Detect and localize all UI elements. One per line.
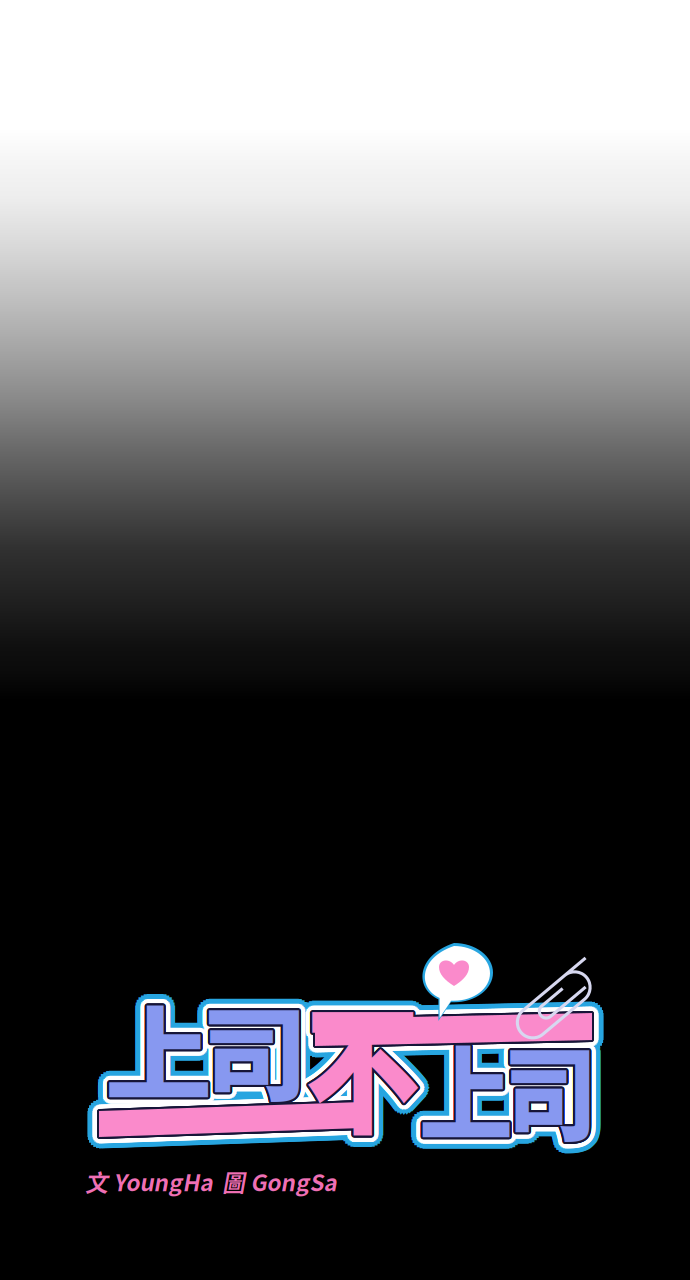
staticText: 上司 (427, 1022, 675, 1211)
staticText: 上司 (422, 1008, 670, 1198)
staticText: 上司 (413, 1011, 661, 1200)
staticText: 上司 (95, 968, 343, 1157)
staticText: 上司 (115, 980, 363, 1169)
staticText: 上司 (421, 1008, 669, 1197)
staticText: 上司 (424, 1009, 672, 1199)
staticText: 上司 (107, 973, 355, 1162)
staticText: 上司 (420, 1012, 668, 1201)
staticText: 不 (303, 961, 442, 1162)
staticText: 不 (313, 969, 452, 1170)
staticText: 上司 (421, 1013, 669, 1202)
staticText: 不 (303, 967, 442, 1168)
staticText: 不 (307, 961, 446, 1162)
staticText: 上司 (111, 964, 359, 1153)
staticText: 上司 (107, 980, 355, 1169)
staticText: 上司 (416, 1025, 664, 1214)
staticText: 不 (311, 959, 450, 1160)
staticText: 上司 (413, 1016, 661, 1205)
staticText: 上司 (420, 1015, 668, 1205)
staticText: 不 (315, 955, 454, 1156)
staticText: 不 (295, 967, 434, 1168)
staticText: 不 (307, 955, 446, 1155)
staticText: 上司 (104, 972, 352, 1161)
staticText: 不 (311, 961, 450, 1162)
staticText: 上司 (430, 1014, 678, 1203)
staticText: 上司 (417, 1008, 665, 1197)
staticText: 不 (299, 951, 438, 1152)
staticText: 上司 (99, 977, 347, 1166)
staticText: 上司 (419, 1002, 667, 1192)
staticText: 不 (305, 963, 444, 1164)
staticText: 上司 (93, 974, 341, 1163)
staticText: 不 (311, 951, 450, 1152)
staticText: 上司 (103, 974, 351, 1163)
staticText: 不 (306, 962, 445, 1163)
staticText: 不 (308, 955, 447, 1156)
staticText: 上司 (107, 974, 355, 1163)
staticText: 不 (304, 963, 443, 1163)
staticText: 不 (299, 964, 438, 1165)
staticText: 不 (299, 963, 438, 1163)
staticText: 上司 (107, 968, 355, 1157)
staticText: 上司 (425, 1011, 673, 1200)
staticText: 上司 (95, 980, 343, 1169)
staticText: 上司 (417, 1014, 665, 1203)
staticText: 不 (311, 958, 450, 1159)
staticText: 上司 (419, 1012, 667, 1201)
staticText: 不 (305, 972, 444, 1173)
staticText: 上司 (94, 971, 342, 1160)
staticText: 不 (305, 961, 444, 1162)
staticText: 不 (305, 967, 444, 1168)
staticText: 不 (306, 963, 445, 1163)
staticText: 上司 (99, 971, 347, 1160)
staticText: 上司 (108, 963, 356, 1152)
staticText: 上司 (413, 1024, 661, 1213)
staticText: 上司 (427, 1006, 675, 1195)
staticText: 上司 (98, 974, 346, 1163)
staticText: 不 (304, 959, 443, 1160)
staticText: 不 (305, 949, 444, 1150)
staticText: 上司 (103, 980, 351, 1169)
staticText: 上司 (104, 972, 352, 1161)
staticText: 上司 (102, 963, 350, 1152)
staticText: 上司 (106, 972, 354, 1161)
staticText: 上司 (113, 982, 361, 1171)
staticText: 不 (307, 961, 446, 1162)
staticText: 不 (303, 960, 442, 1161)
staticText: 不 (295, 955, 434, 1156)
staticText: 上司 (416, 1003, 664, 1192)
staticText: 上司 (97, 982, 345, 1171)
staticText: 上司 (111, 972, 359, 1161)
staticText: 上司 (113, 966, 361, 1155)
staticText: 上司 (106, 973, 354, 1162)
staticText: 不 (303, 960, 442, 1161)
staticText: 上司 (99, 972, 347, 1161)
staticText: 上司 (422, 1020, 670, 1209)
staticText: 上司 (97, 966, 345, 1155)
staticText: 不 (310, 966, 449, 1166)
staticText: 不 (308, 972, 447, 1173)
staticText: 上司 (419, 1025, 667, 1215)
staticText: 不 (304, 960, 443, 1160)
staticText: 上司 (100, 969, 348, 1159)
staticText: 上司 (105, 962, 353, 1152)
staticText: 上司 (429, 1008, 677, 1197)
staticText: 不 (308, 967, 447, 1167)
staticText: 上司 (94, 977, 342, 1166)
staticText: 上司 (106, 975, 354, 1165)
staticText: 上司 (430, 1017, 678, 1206)
staticText: 不 (299, 959, 438, 1160)
staticText: 不 (300, 966, 439, 1166)
staticText: 上司 (409, 1008, 657, 1197)
staticText: 上司 (417, 1015, 665, 1204)
staticText: 不 (311, 963, 450, 1163)
staticText: 上司 (104, 973, 352, 1162)
staticText: 上司 (111, 971, 359, 1160)
staticText: 不 (305, 959, 444, 1160)
staticText: 上司 (105, 980, 353, 1170)
staticText: 上司 (417, 1013, 665, 1203)
staticText: 不 (300, 956, 439, 1157)
staticText: 不 (311, 971, 450, 1172)
staticText: 上司 (418, 1016, 666, 1205)
staticText: 上司 (111, 976, 359, 1165)
